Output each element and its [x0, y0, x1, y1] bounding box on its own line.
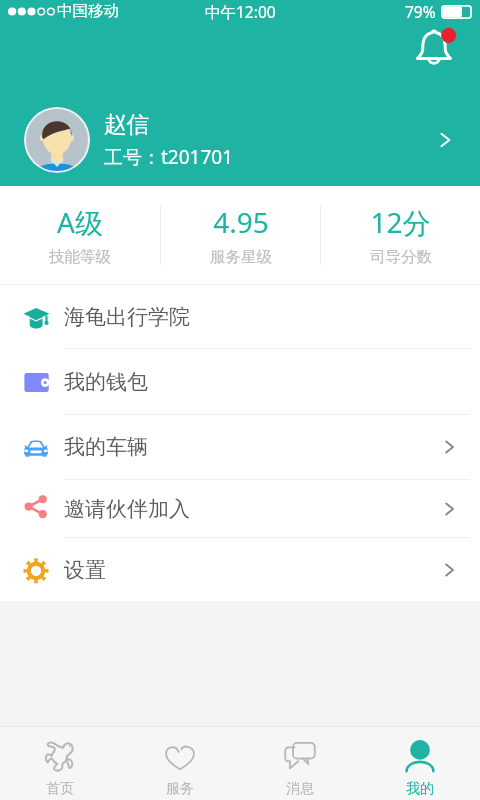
staticText: 海龟出行学院: [64, 304, 190, 330]
staticText: 中午12:00: [205, 1, 276, 22]
button[interactable]: 消息: [240, 727, 360, 800]
button[interactable]: 我的车辆: [0, 415, 480, 479]
staticText: 服务星级: [210, 247, 272, 267]
staticText: 司导分数: [370, 247, 432, 267]
button[interactable]: 4.95: [161, 186, 320, 284]
staticText: 4.95: [213, 203, 269, 241]
staticText: 工号：t201701: [104, 144, 234, 170]
button[interactable]: 服务: [120, 727, 240, 800]
staticText: 我的: [406, 780, 434, 798]
staticText: 我的车辆: [64, 434, 148, 460]
button[interactable]: 设置: [0, 538, 480, 601]
staticText: 79%: [405, 1, 436, 22]
button[interactable]: Notifications: [408, 26, 464, 72]
button[interactable]: 我的钱包: [0, 349, 480, 414]
staticText: 我的钱包: [64, 369, 148, 395]
staticText: 中国移动: [57, 1, 119, 21]
button[interactable]: 邀请伙伴加入: [0, 480, 480, 537]
button[interactable]: 赵信: [0, 94, 480, 186]
staticText: 12分: [370, 203, 431, 241]
button[interactable]: A级: [0, 186, 160, 284]
staticText: 首页: [46, 780, 74, 798]
staticText: 技能等级: [49, 247, 111, 267]
staticText: 邀请伙伴加入: [64, 496, 190, 522]
staticText: 设置: [64, 557, 106, 583]
staticText: 赵信: [104, 110, 149, 138]
staticText: A级: [57, 203, 103, 241]
button[interactable]: 12分: [321, 186, 480, 284]
button[interactable]: 我的: [360, 727, 480, 800]
button[interactable]: 海龟出行学院: [0, 285, 480, 348]
staticText: 服务: [166, 780, 194, 798]
button[interactable]: 首页: [0, 727, 120, 800]
staticText: 消息: [286, 780, 314, 798]
